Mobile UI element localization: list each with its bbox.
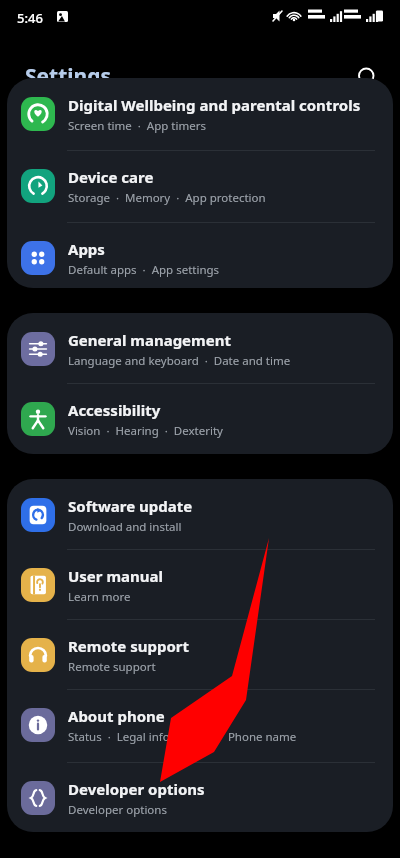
staticText: Vision · Hearing · Dexterity bbox=[68, 423, 223, 439]
button[interactable]: User manual bbox=[7, 549, 393, 621]
button[interactable]: Developer options bbox=[7, 762, 393, 832]
staticText: Software update bbox=[68, 496, 193, 516]
staticText: Language and keyboard · Date and time bbox=[68, 353, 291, 369]
staticText: Default apps · App settings bbox=[68, 262, 220, 278]
staticText: Learn more bbox=[68, 589, 131, 605]
button[interactable]: Search bbox=[350, 60, 386, 96]
staticText: 5:46 bbox=[17, 9, 43, 27]
button[interactable]: About phone bbox=[7, 689, 393, 761]
staticText: General management bbox=[68, 330, 231, 350]
button[interactable]: Software update bbox=[7, 479, 393, 551]
staticText: Developer options bbox=[68, 779, 205, 799]
staticText: Download and install bbox=[68, 519, 182, 535]
staticText: Remote support bbox=[68, 659, 156, 675]
staticText: User manual bbox=[68, 566, 163, 586]
staticText: Remote support bbox=[68, 636, 189, 656]
staticText: About phone bbox=[68, 706, 165, 726]
staticText: Apps bbox=[68, 239, 105, 259]
staticText: Storage · Memory · App protection bbox=[68, 190, 266, 206]
button[interactable]: Device care bbox=[7, 150, 393, 222]
staticText: Settings bbox=[25, 62, 112, 91]
staticText: Digital Wellbeing and parental controls bbox=[68, 95, 361, 115]
button[interactable]: Apps bbox=[7, 222, 393, 288]
staticText: Status · Legal information · Phone name bbox=[68, 729, 297, 745]
staticText: Developer options bbox=[68, 802, 167, 818]
button[interactable]: Accessibility bbox=[7, 383, 393, 454]
staticText: Screen time · App timers bbox=[68, 118, 206, 134]
staticText: Device care bbox=[68, 167, 154, 187]
button[interactable]: Remote support bbox=[7, 619, 393, 691]
button[interactable]: General management bbox=[7, 313, 393, 385]
staticText: Accessibility bbox=[68, 400, 161, 420]
button[interactable]: Digital Wellbeing and parental controls bbox=[7, 78, 393, 150]
